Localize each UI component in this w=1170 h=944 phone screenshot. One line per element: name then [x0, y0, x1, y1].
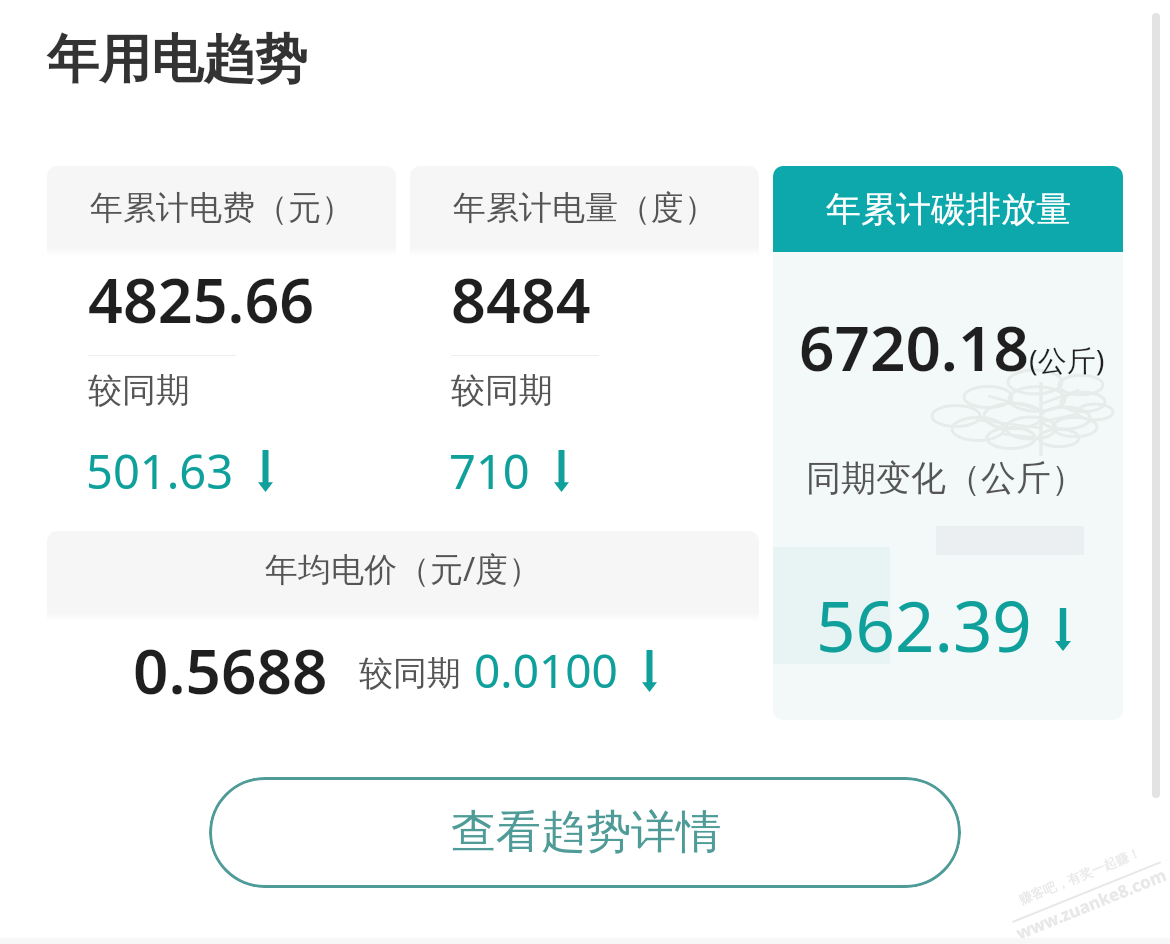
staticText: 同期变化（公斤）	[806, 456, 1086, 500]
staticText: 年累计电量（度）	[453, 187, 717, 229]
staticText: 0.0100	[474, 639, 618, 702]
staticText: 501.63	[86, 439, 234, 503]
staticText: 年均电价（元/度）	[265, 546, 542, 591]
button[interactable]: 年均电价（元/度）	[47, 531, 759, 730]
staticText: 较同期	[359, 652, 461, 695]
button[interactable]: 年累计碳排放量	[773, 166, 1123, 720]
staticText: 较同期	[88, 369, 190, 412]
button[interactable]: 年累计电费（元）	[47, 166, 396, 517]
staticText: 4825.66	[88, 258, 315, 341]
staticText: 年累计电费（元）	[90, 187, 354, 229]
button[interactable]: 年累计电量（度）	[410, 166, 759, 517]
staticText: 710	[449, 439, 530, 503]
staticText: (公斤)	[1029, 340, 1105, 380]
button[interactable]: 查看趋势详情	[209, 777, 961, 888]
staticText: 查看趋势详情	[451, 804, 721, 861]
staticText: 年累计碳排放量	[826, 187, 1071, 231]
staticText: 8484	[451, 258, 591, 341]
staticText: 6720.18	[799, 305, 1029, 389]
staticText: 年用电趋势	[47, 27, 307, 93]
staticText: 562.39	[816, 578, 1032, 672]
staticText: 0.5688	[133, 628, 328, 712]
staticText: 较同期	[451, 369, 553, 412]
